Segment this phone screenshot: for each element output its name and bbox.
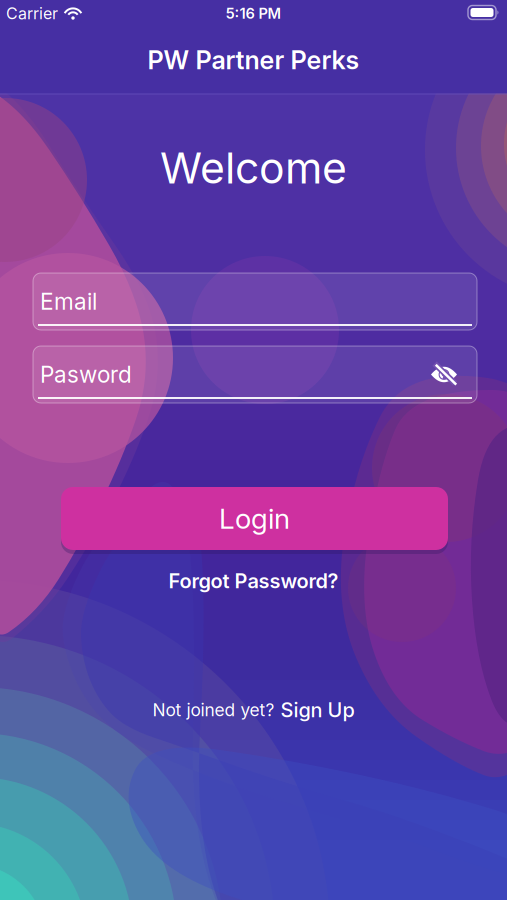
staticText: PW Partner Perks: [147, 45, 359, 75]
staticText: 5:16 PM: [225, 5, 281, 22]
button[interactable]: Sign Up: [280, 698, 354, 722]
button[interactable]: Login: [61, 485, 448, 552]
staticText: Welcome: [160, 143, 347, 193]
staticText: Pasword: [40, 361, 132, 388]
staticText: Sign Up: [280, 698, 354, 722]
staticText: Forgot Password?: [168, 569, 338, 593]
button[interactable]: Show password: [423, 353, 465, 395]
button[interactable]: Forgot Password?: [168, 569, 338, 593]
staticText: Not joined yet?: [152, 700, 274, 720]
staticText: Carrier: [6, 4, 58, 23]
staticText: Login: [219, 502, 290, 535]
button[interactable]: Email: [33, 273, 477, 330]
staticText: Email: [40, 288, 97, 315]
button[interactable]: Pasword: [33, 346, 477, 403]
